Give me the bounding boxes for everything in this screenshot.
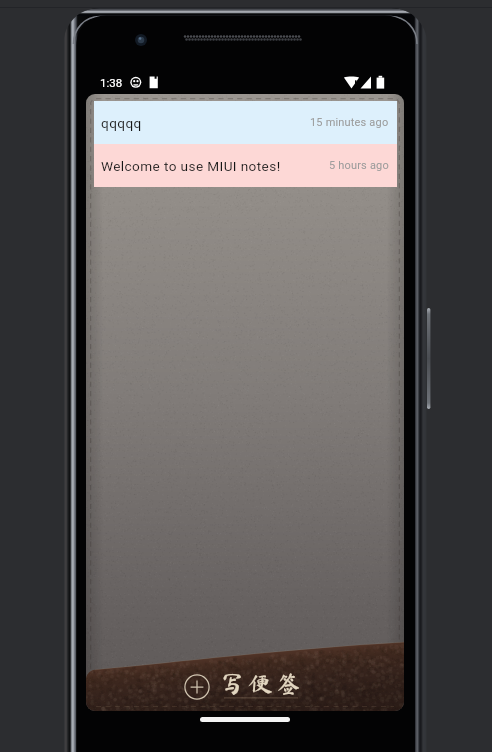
button[interactable]: Write a new note — [184, 674, 305, 700]
staticText: 15 minutes ago — [310, 116, 389, 129]
staticText: 1:38 — [100, 76, 123, 89]
staticText: 写便签 — [220, 671, 305, 695]
staticText: 5 hours ago — [329, 159, 389, 172]
button[interactable]: Welcome to use MIUI notes! — [94, 144, 397, 187]
button[interactable]: qqqqq — [94, 101, 397, 144]
staticText: Welcome to use MIUI notes! — [101, 158, 281, 174]
staticText: qqqqq — [101, 115, 142, 131]
